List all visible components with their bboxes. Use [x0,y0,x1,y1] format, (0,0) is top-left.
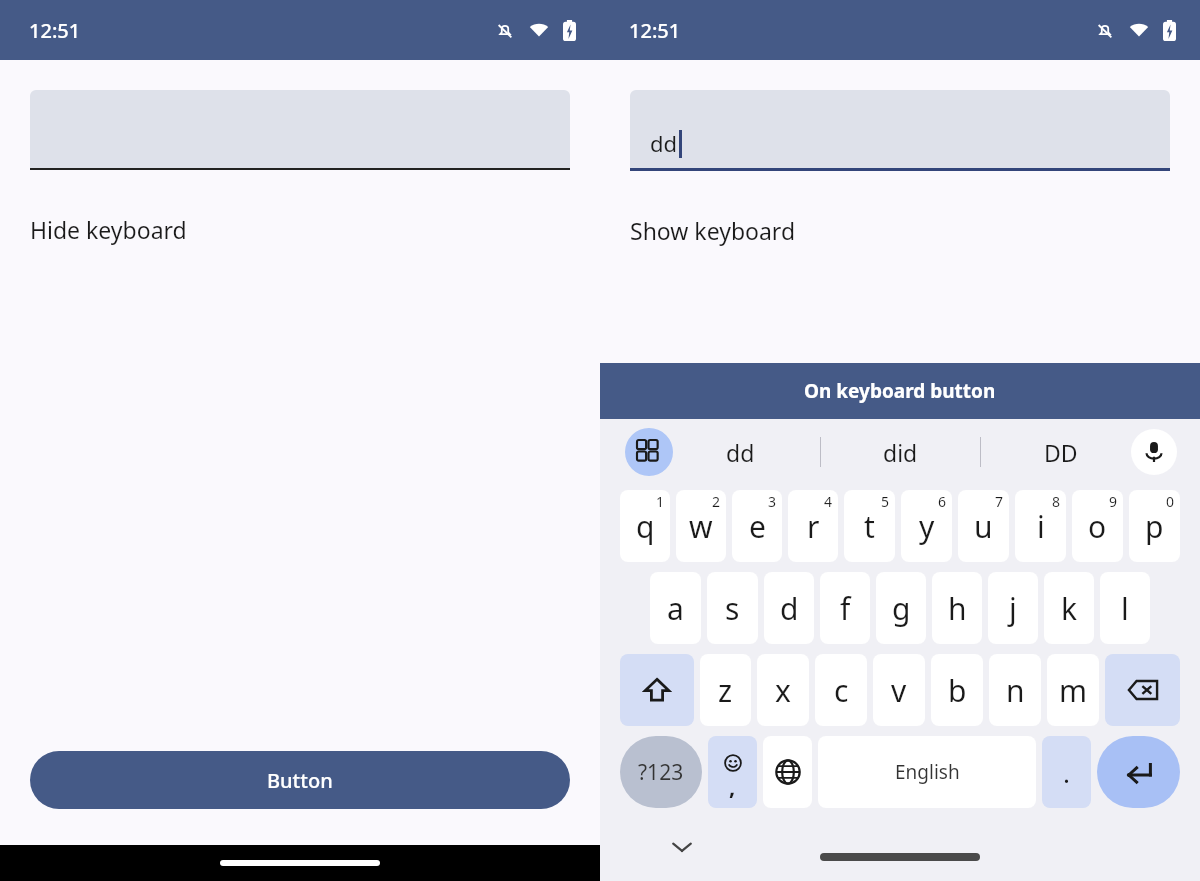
button[interactable]: s [707,572,758,644]
staticText: u [974,506,993,547]
staticText: On keyboard button [804,378,996,404]
button[interactable]: y [901,490,952,562]
staticText: 1 [656,492,665,511]
staticText: 8 [1052,492,1061,511]
staticText: 9 [1109,492,1118,511]
button[interactable]: Hide keyboard [662,827,702,867]
button[interactable]: m [1047,654,1099,726]
button[interactable]: dd [660,419,820,485]
staticText: w [689,506,713,547]
staticText: dd [726,437,755,468]
staticText: h [948,588,967,629]
button[interactable]: g [876,572,926,644]
button[interactable]: f [820,572,870,644]
staticText: l [1121,588,1129,629]
button[interactable]: i [1015,490,1066,562]
button[interactable]: ?123 [620,736,702,808]
staticText: English [895,759,960,785]
button[interactable]: l [1100,572,1150,644]
staticText: g [892,588,911,629]
button[interactable]: o [1072,490,1123,562]
staticText: s [725,588,740,629]
button[interactable]: n [989,654,1041,726]
staticText: , [729,771,736,801]
button[interactable]: r [788,490,838,562]
button[interactable]: j [988,572,1038,644]
staticText: o [1088,506,1107,547]
button[interactable]: u [958,490,1009,562]
button[interactable]: d [764,572,814,644]
staticText: b [948,670,967,711]
button[interactable]: Backspace [1105,654,1180,726]
staticText: r [807,506,820,547]
button[interactable]: DD [981,419,1140,485]
button[interactable]: Shift [620,654,694,726]
button[interactable]: did [821,419,980,485]
button[interactable]: English [818,736,1036,808]
button[interactable]: k [1044,572,1094,644]
staticText: i [1037,506,1045,547]
button[interactable]: On keyboard button [600,363,1200,419]
button[interactable]: h [932,572,982,644]
staticText: 4 [824,492,833,511]
staticText: p [1145,506,1164,547]
button[interactable]: x [757,654,809,726]
staticText: z [718,670,733,711]
button[interactable]: . [1042,736,1091,808]
button[interactable]: p [1129,490,1180,562]
staticText: k [1061,588,1078,629]
staticText: f [840,588,851,629]
staticText: 2 [712,492,721,511]
staticText: ?123 [638,758,684,787]
staticText: a [667,588,684,629]
staticText: d [780,588,799,629]
staticText: t [864,506,875,547]
staticText: Button [267,767,333,794]
staticText: v [891,670,907,711]
button[interactable]: w [676,490,726,562]
staticText: did [883,437,918,468]
button[interactable]: Enter [1097,736,1180,808]
button[interactable]: z [700,654,751,726]
button[interactable]: q [620,490,670,562]
staticText: n [1006,670,1025,711]
staticText: e [749,506,766,547]
staticText: . [1063,755,1070,790]
button[interactable]: v [873,654,925,726]
button[interactable]: Hide keyboard [30,214,187,245]
staticText: 12:51 [629,17,681,44]
staticText: 7 [995,492,1004,511]
button[interactable]: Apps [625,428,673,476]
button[interactable]: Change language [763,736,812,808]
staticText: y [919,506,935,547]
staticText: q [636,506,655,547]
staticText: x [775,670,791,711]
button[interactable]: Show keyboard [630,215,796,246]
button[interactable]: dd [630,90,1170,168]
staticText: m [1059,670,1088,711]
button[interactable]: c [815,654,867,726]
button[interactable]: b [931,654,983,726]
staticText: 6 [938,492,947,511]
staticText: 12:51 [29,17,81,44]
staticText: 3 [768,492,777,511]
staticText: 5 [881,492,890,511]
button[interactable]: e [732,490,782,562]
staticText: c [834,670,849,711]
button[interactable]: Button [30,751,570,809]
staticText: j [1009,588,1017,629]
button[interactable]: a [650,572,701,644]
button[interactable]: Emoji [708,736,757,808]
button[interactable]: t [844,490,895,562]
button[interactable]: Voice input [1131,429,1177,475]
staticText: 0 [1166,492,1175,511]
staticText: DD [1044,437,1078,468]
staticText: dd [650,128,678,158]
